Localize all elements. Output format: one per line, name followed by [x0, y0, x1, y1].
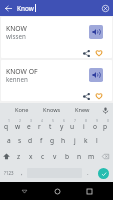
button[interactable]: k: [80, 132, 91, 148]
button[interactable]: f: [36, 132, 47, 148]
staticText: KNOW OF: [6, 67, 38, 76]
staticText: q: [4, 122, 9, 131]
staticText: wissen: [6, 32, 26, 40]
button[interactable]: 5: [45, 117, 56, 132]
staticText: a: [7, 136, 11, 145]
staticText: f: [40, 136, 43, 145]
button[interactable]: 6: [56, 117, 67, 132]
button[interactable]: l: [91, 132, 102, 148]
button[interactable]: g: [47, 132, 58, 148]
button[interactable]: d: [25, 132, 36, 148]
button[interactable]: 8: [78, 117, 89, 132]
button[interactable]: b: [61, 148, 73, 164]
staticText: i: [83, 122, 85, 131]
staticText: Kone: [15, 106, 29, 114]
button[interactable]: c: [37, 148, 49, 164]
button[interactable]: Favorite: [94, 48, 104, 58]
staticText: 2: [19, 118, 21, 123]
staticText: 7: [74, 118, 76, 123]
button[interactable]: n: [73, 148, 85, 164]
staticText: v: [53, 152, 57, 161]
staticText: c: [41, 152, 45, 161]
button[interactable]: s: [14, 132, 25, 148]
button[interactable]: 9: [89, 117, 100, 132]
button[interactable]: KNOW: [1, 17, 112, 58]
staticText: 5: [52, 118, 54, 123]
staticText: b: [65, 152, 70, 161]
staticText: Knows: [43, 106, 61, 114]
staticText: 8: [85, 118, 87, 123]
staticText: j: [74, 136, 76, 145]
staticText: 3: [30, 118, 32, 123]
button[interactable]: x: [25, 148, 37, 164]
staticText: r: [38, 122, 41, 131]
button[interactable]: v: [49, 148, 61, 164]
staticText: h: [61, 136, 66, 145]
staticText: 9: [96, 118, 98, 123]
button[interactable]: Back: [0, 0, 16, 16]
staticText: s: [18, 136, 22, 145]
button[interactable]: m: [85, 148, 97, 164]
staticText: y: [60, 122, 64, 131]
staticText: x: [29, 152, 33, 161]
button[interactable]: Share: [81, 48, 91, 58]
staticText: d: [28, 136, 33, 145]
staticText: u: [70, 122, 75, 131]
staticText: z: [17, 152, 21, 161]
button[interactable]: 3: [23, 117, 34, 132]
staticText: l: [96, 136, 98, 145]
staticText: n: [77, 152, 82, 161]
staticText: p: [103, 122, 108, 131]
staticText: g: [50, 136, 55, 145]
staticText: 0: [107, 118, 109, 123]
button[interactable]: z: [13, 148, 25, 164]
staticText: t: [49, 122, 52, 131]
staticText: kennen: [6, 75, 28, 83]
button[interactable]: Favorite: [94, 91, 104, 101]
button[interactable]: Backspace: [97, 148, 113, 164]
staticText: 1: [8, 118, 10, 123]
button[interactable]: Play audio: [89, 68, 103, 82]
button[interactable]: a: [3, 132, 14, 148]
button[interactable]: Back: [16, 183, 32, 199]
staticText: w: [15, 122, 21, 131]
staticText: o: [93, 122, 97, 131]
button[interactable]: Knows: [37, 103, 67, 117]
button[interactable]: h: [58, 132, 69, 148]
button[interactable]: Search: [93, 164, 113, 182]
staticText: m: [88, 152, 95, 161]
button[interactable]: Clear: [97, 0, 113, 16]
button[interactable]: Comma: [17, 164, 27, 182]
staticText: k: [84, 136, 88, 145]
button[interactable]: j: [69, 132, 80, 148]
button[interactable]: .: [82, 164, 93, 182]
button[interactable]: 0: [100, 117, 111, 132]
staticText: Know: [17, 4, 34, 13]
button[interactable]: Recents: [81, 183, 97, 199]
button[interactable]: Shift: [0, 148, 13, 164]
staticText: .: [87, 169, 89, 177]
button[interactable]: Kone: [7, 103, 37, 117]
button[interactable]: KNOW OF: [1, 60, 112, 101]
button[interactable]: Share: [81, 91, 91, 101]
staticText: 6: [63, 118, 65, 123]
staticText: e: [27, 122, 31, 131]
button[interactable]: Voice input: [97, 103, 113, 117]
staticText: Knew: [75, 106, 90, 114]
button[interactable]: Home: [49, 183, 65, 199]
button[interactable]: 7: [67, 117, 78, 132]
staticText: ,: [21, 169, 23, 177]
staticText: KNOW: [6, 24, 27, 33]
staticText: 4: [41, 118, 43, 123]
button[interactable]: Knew: [67, 103, 97, 117]
button[interactable]: Play audio: [89, 25, 103, 39]
button[interactable]: ?123: [0, 164, 17, 182]
button[interactable]: 2: [12, 117, 23, 132]
button[interactable]: 4: [34, 117, 45, 132]
staticText: ?123: [4, 170, 14, 176]
button[interactable]: 1: [1, 117, 12, 132]
